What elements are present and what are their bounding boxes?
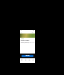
button[interactable]: Favourite [31, 32, 33, 33]
button[interactable]: Share [33, 32, 35, 33]
staticText: Garden Salad Bowl [21, 40, 29, 41]
staticText: Fresh greens, cherry tomatoes, cucumber … [21, 42, 34, 43]
button[interactable]: Home [20, 58, 24, 63]
button[interactable]: Menu [24, 58, 28, 63]
button[interactable]: Vegetarian [21, 38, 24, 39]
button[interactable]: Back [20, 32, 22, 33]
button[interactable]: Orders [27, 58, 31, 63]
button[interactable]: Profile [31, 58, 35, 63]
button[interactable]: Add to cart [21, 55, 34, 57]
